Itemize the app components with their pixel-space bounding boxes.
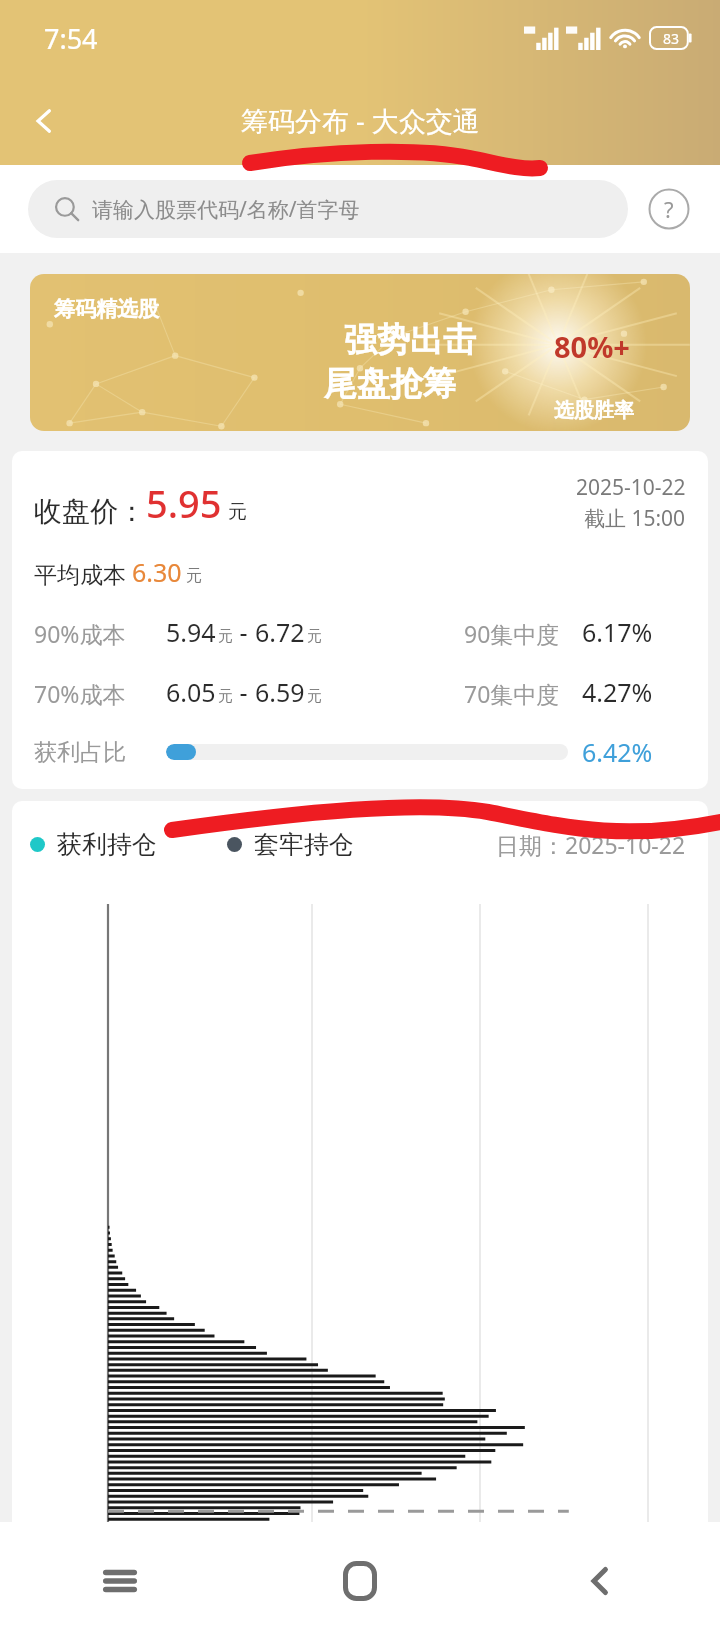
staticText: 元 bbox=[228, 500, 247, 524]
staticText: - bbox=[233, 615, 255, 649]
staticText: 5.95 bbox=[146, 477, 222, 529]
staticText: 5.94 bbox=[166, 615, 216, 649]
staticText: 请输入股票代码/名称/首字母 bbox=[92, 195, 360, 224]
staticText: 元 bbox=[186, 566, 202, 586]
staticText: 6.72 bbox=[255, 615, 305, 649]
staticText: 90集中度 bbox=[464, 618, 560, 649]
staticText: 90%成本 bbox=[34, 618, 166, 649]
button[interactable]: Back bbox=[16, 93, 72, 149]
button[interactable]: Recents bbox=[0, 1522, 240, 1640]
staticText: 元 bbox=[218, 687, 233, 706]
staticText: 元 bbox=[307, 627, 322, 646]
staticText: 获利持仓 bbox=[57, 829, 157, 860]
staticText: 6.42% bbox=[582, 735, 686, 769]
staticText: 6.05 bbox=[166, 675, 216, 709]
staticText: 6.59 bbox=[255, 675, 305, 709]
staticText: 套牢持仓 bbox=[254, 829, 354, 860]
staticText: 筹码精选股 bbox=[54, 296, 159, 322]
staticText: 筹码分布 - 大众交通 bbox=[241, 102, 480, 139]
staticText: 6.17% bbox=[582, 615, 686, 649]
staticText: 尾盘抢筹 bbox=[324, 363, 456, 405]
button[interactable]: 请输入股票代码/名称/首字母 bbox=[28, 180, 628, 238]
staticText: 4.27% bbox=[582, 675, 686, 709]
staticText: 强势出击 bbox=[344, 319, 476, 361]
staticText: 83 bbox=[663, 29, 680, 48]
staticText: 2025-10-22 bbox=[576, 473, 686, 502]
staticText: 平均成本 bbox=[34, 558, 132, 589]
staticText: 选股胜率 bbox=[554, 398, 634, 423]
staticText: 截止 15:00 bbox=[584, 504, 686, 533]
staticText: 70集中度 bbox=[464, 678, 560, 709]
button[interactable]: Home bbox=[240, 1522, 480, 1640]
staticText: 收盘价： bbox=[34, 494, 146, 529]
staticText: 70%成本 bbox=[34, 678, 166, 709]
staticText: 日期：2025-10-22 bbox=[496, 829, 686, 860]
staticText: 6.30 bbox=[132, 555, 182, 589]
staticText: 元 bbox=[218, 627, 233, 646]
staticText: 7:54 bbox=[44, 20, 98, 57]
button[interactable]: Help bbox=[646, 186, 692, 232]
staticText: 80%+ bbox=[554, 327, 630, 366]
button[interactable]: 筹码精选股 bbox=[30, 274, 690, 431]
staticText: - bbox=[233, 675, 255, 709]
button[interactable]: Back bbox=[480, 1522, 720, 1640]
staticText: 元 bbox=[307, 687, 322, 706]
staticText: 获利占比 bbox=[34, 738, 166, 767]
staticText: ? bbox=[664, 194, 674, 224]
